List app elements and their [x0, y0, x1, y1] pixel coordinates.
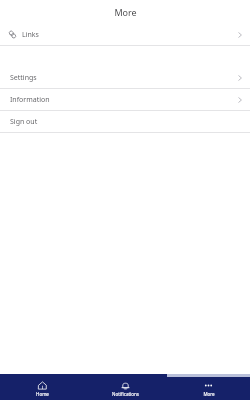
- button[interactable]: Notifications: [84, 379, 167, 399]
- other: Notifications: [121, 381, 130, 390]
- button[interactable]: Information: [0, 89, 250, 110]
- staticText: Notifications: [112, 391, 139, 397]
- other: Home: [38, 381, 47, 390]
- button[interactable]: Sign out: [0, 111, 250, 132]
- staticText: More: [114, 6, 137, 18]
- button[interactable]: Settings: [0, 67, 250, 88]
- staticText: More: [203, 391, 215, 397]
- other: More: [204, 381, 213, 390]
- staticText: Sign out: [10, 117, 38, 127]
- staticText: Settings: [10, 73, 37, 83]
- button[interactable]: Home: [0, 379, 84, 399]
- button[interactable]: More: [167, 379, 250, 399]
- staticText: Information: [10, 95, 50, 105]
- staticText: Home: [36, 391, 49, 397]
- button[interactable]: Links: [0, 24, 250, 45]
- staticText: Links: [22, 30, 39, 40]
